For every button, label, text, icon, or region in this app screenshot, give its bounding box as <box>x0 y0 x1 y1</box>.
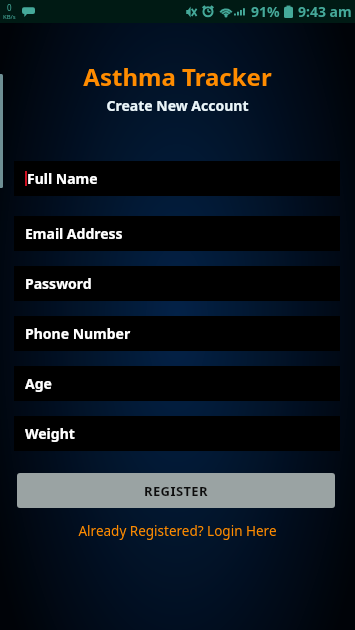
other: Wi-Fi <box>219 5 233 18</box>
staticText: Create New Account <box>0 96 355 115</box>
button[interactable]: Age <box>14 366 340 401</box>
other: Battery <box>284 5 293 19</box>
staticText: Age <box>25 374 52 393</box>
staticText: Asthma Tracker <box>0 60 355 93</box>
staticText: Weight <box>25 424 75 443</box>
button[interactable]: Full Name <box>14 161 340 196</box>
staticText: 91% <box>251 2 280 21</box>
button[interactable]: REGISTER <box>17 473 335 508</box>
staticText: Email Address <box>25 224 123 243</box>
button[interactable]: Phone Number <box>14 316 340 351</box>
staticText: KB/s <box>3 13 16 21</box>
staticText: Password <box>25 274 92 293</box>
staticText: Already Registered? Login Here <box>78 522 277 540</box>
button[interactable]: Already Registered? Login Here <box>0 519 355 543</box>
staticText: REGISTER <box>144 482 208 500</box>
other: Alarm <box>202 5 214 19</box>
staticText: Full Name <box>27 169 98 188</box>
staticText: 9:43 am <box>298 2 352 21</box>
staticText: Phone Number <box>25 324 131 343</box>
button[interactable]: Email Address <box>14 216 340 251</box>
button[interactable]: Password <box>14 266 340 301</box>
staticText: 0 <box>7 2 12 13</box>
other: Muted <box>186 5 197 19</box>
other: Messages <box>22 5 35 18</box>
button[interactable]: Weight <box>14 416 340 451</box>
